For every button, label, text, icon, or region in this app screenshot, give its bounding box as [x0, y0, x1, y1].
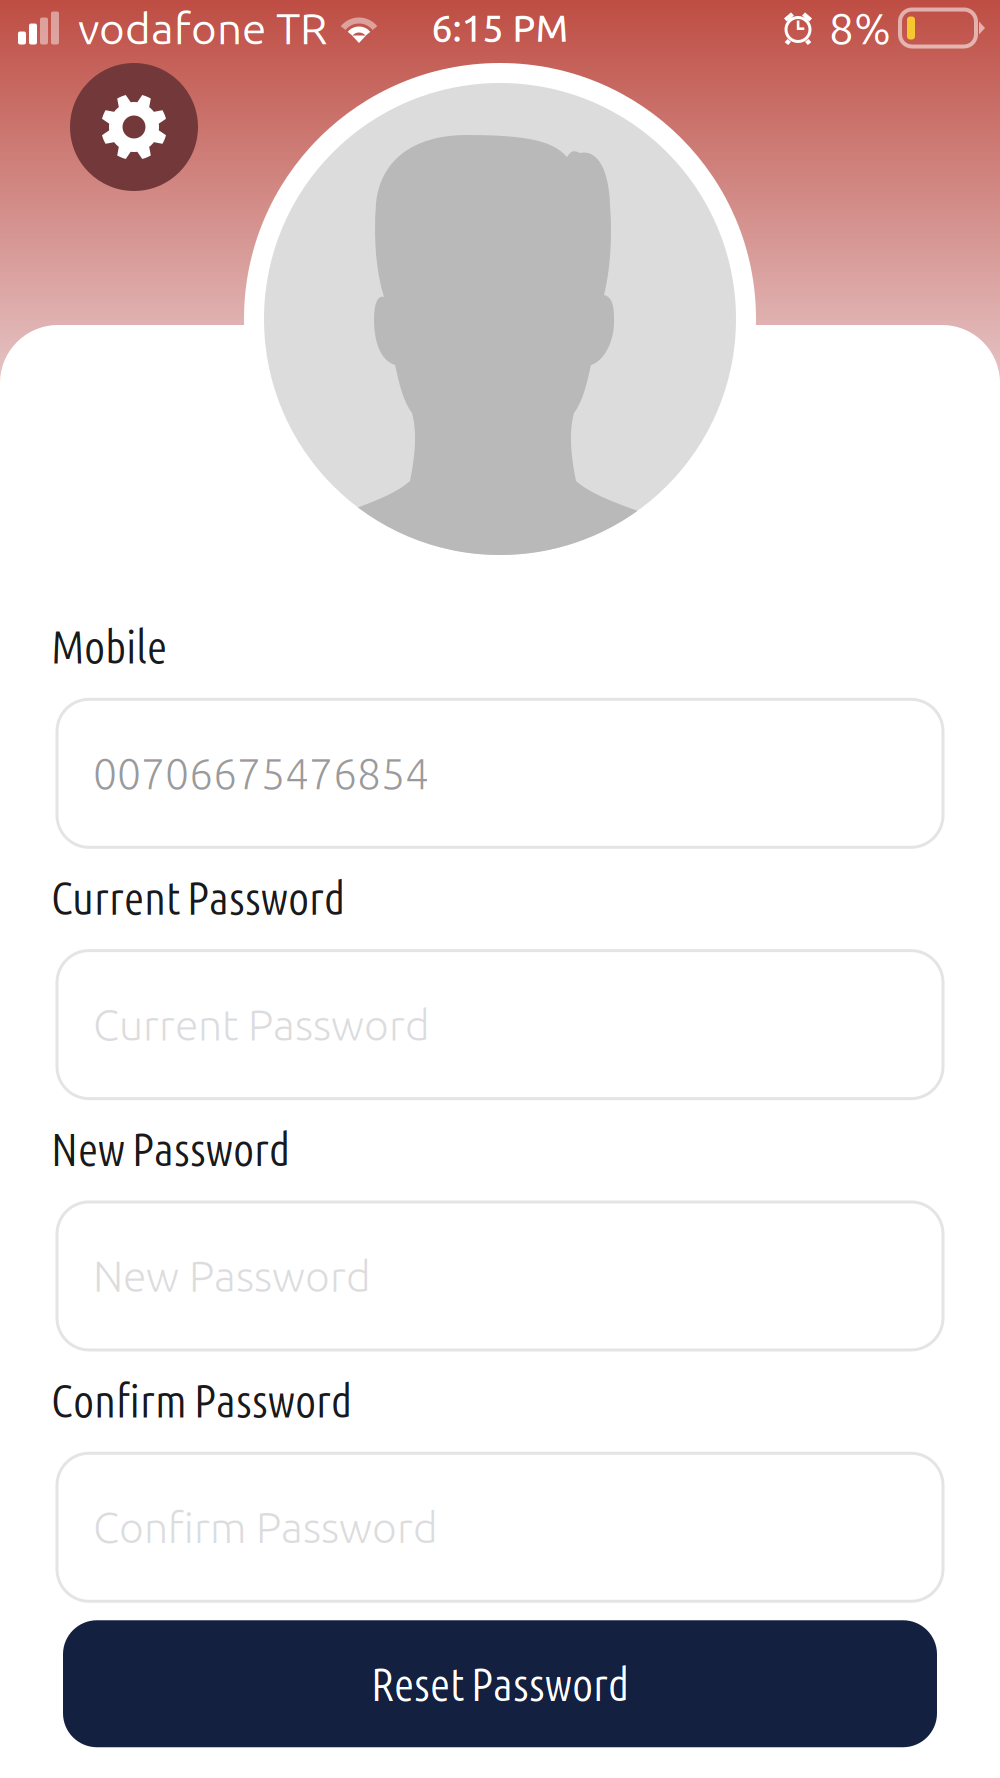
button[interactable]: Reset Password	[63, 1620, 937, 1747]
staticText: 00706675476854	[93, 749, 429, 797]
button[interactable]: 00706675476854	[57, 699, 943, 847]
staticText: New Password	[93, 1252, 371, 1300]
staticText: Confirm Password	[51, 1374, 352, 1426]
button[interactable]: Current Password	[57, 951, 943, 1099]
staticText: Current Password	[93, 1001, 430, 1048]
staticText: 6:15 PM	[431, 7, 568, 49]
staticText: Mobile	[51, 620, 167, 672]
staticText: 8%	[829, 3, 891, 53]
button[interactable]: New Password	[57, 1202, 943, 1350]
staticText: Current Password	[51, 871, 345, 924]
staticText: New Password	[51, 1123, 290, 1175]
staticText: vodafone TR	[78, 3, 327, 53]
button[interactable]: Confirm Password	[57, 1453, 943, 1601]
staticText: Confirm Password	[93, 1503, 438, 1551]
button[interactable]: Settings	[70, 63, 198, 191]
staticText: Reset Password	[371, 1658, 629, 1710]
